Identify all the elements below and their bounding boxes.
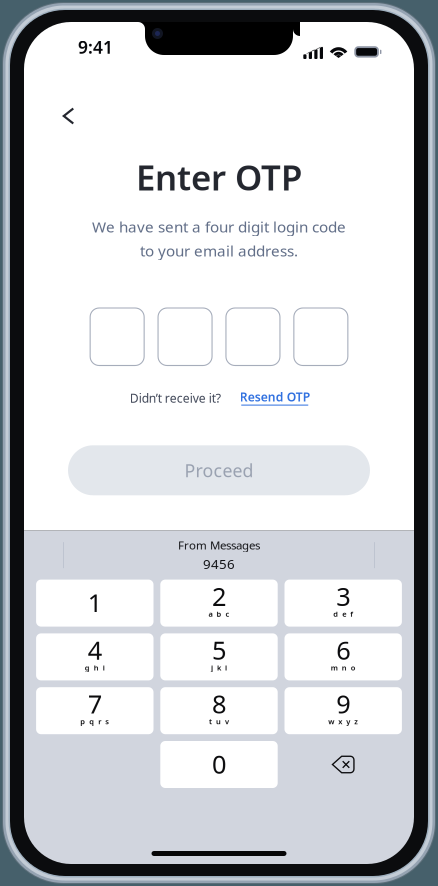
button[interactable]: 7 bbox=[36, 687, 153, 734]
staticText: 9456 bbox=[203, 555, 235, 573]
button[interactable]: OTP digit bbox=[90, 308, 144, 365]
staticText: a b c bbox=[208, 609, 229, 619]
button[interactable]: OTP digit bbox=[226, 308, 280, 365]
button[interactable]: 2 bbox=[160, 580, 278, 627]
staticText: Resend OTP bbox=[240, 389, 310, 405]
staticText: We have sent a four digit login code bbox=[92, 216, 346, 237]
button[interactable]: Resend OTP bbox=[237, 390, 313, 406]
button[interactable]: Delete bbox=[284, 741, 402, 788]
button[interactable]: 1 bbox=[36, 580, 153, 627]
staticText: Proceed bbox=[184, 458, 253, 482]
staticText: 6 bbox=[336, 633, 350, 667]
button[interactable]: 0 bbox=[160, 741, 278, 788]
staticText: m n o bbox=[331, 662, 356, 673]
button[interactable]: 6 bbox=[284, 633, 402, 680]
staticText: 9:41 bbox=[78, 35, 113, 59]
button[interactable]: OTP digit bbox=[294, 308, 348, 365]
button[interactable]: OTP digit bbox=[158, 308, 212, 365]
button[interactable]: Back bbox=[46, 94, 90, 138]
button[interactable]: 3 bbox=[284, 580, 402, 627]
staticText: w x y z bbox=[328, 716, 358, 726]
staticText: d e f bbox=[333, 609, 353, 619]
staticText: Enter OTP bbox=[136, 153, 302, 201]
button[interactable]: 5 bbox=[160, 633, 278, 680]
staticText: Didn’t receive it? bbox=[130, 390, 221, 406]
button[interactable]: Proceed bbox=[68, 445, 370, 495]
staticText: 9 bbox=[336, 686, 350, 721]
button[interactable]: 9 bbox=[284, 687, 402, 734]
staticText: 7 bbox=[88, 686, 102, 721]
staticText: p q r s bbox=[80, 716, 109, 726]
staticText: t u v bbox=[209, 716, 229, 726]
staticText: to your email address. bbox=[140, 240, 298, 261]
staticText: 3 bbox=[336, 579, 350, 613]
staticText: 8 bbox=[212, 686, 226, 721]
staticText: 2 bbox=[212, 579, 226, 613]
staticText: 5 bbox=[212, 633, 226, 667]
staticText: 1 bbox=[88, 585, 102, 620]
staticText: 0 bbox=[212, 747, 226, 781]
staticText: g h i bbox=[85, 662, 105, 673]
staticText: 4 bbox=[88, 633, 102, 667]
staticText: From Messages bbox=[178, 537, 260, 553]
button[interactable]: 4 bbox=[36, 633, 153, 680]
button[interactable]: 8 bbox=[160, 687, 278, 734]
staticText: j k l bbox=[211, 662, 227, 673]
